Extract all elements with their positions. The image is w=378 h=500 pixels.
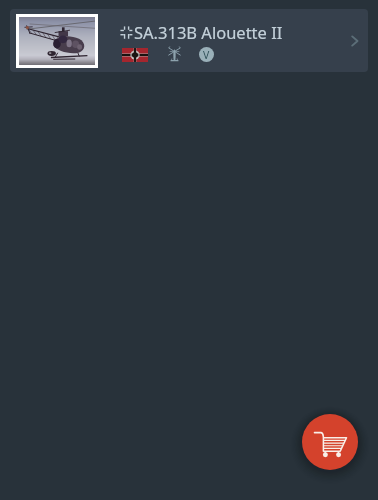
other: Helicopter: [168, 46, 181, 62]
button[interactable]: SA.313B Alouette II: [10, 9, 368, 72]
other: Operator nation: [122, 48, 148, 62]
other: Open details: [348, 31, 362, 51]
staticText: V: [203, 48, 210, 62]
button[interactable]: Variant: [199, 47, 214, 62]
button[interactable]: Add to cart: [302, 414, 358, 470]
staticText: SA.313B Alouette II: [134, 21, 283, 43]
